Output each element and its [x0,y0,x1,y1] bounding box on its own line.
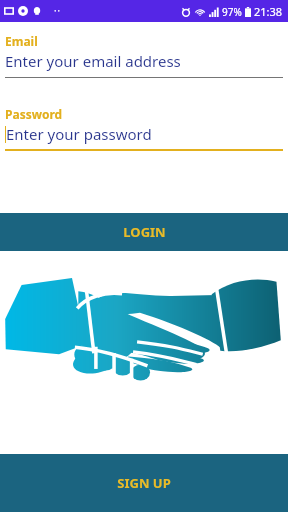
staticText: Email [5,33,38,49]
staticText: Password [5,106,63,122]
staticText: LOGIN [123,223,166,241]
button[interactable]: Email [0,33,288,78]
staticText: Enter your email address [5,51,181,71]
button[interactable]: LOGIN [0,213,288,251]
button[interactable]: Password [0,106,288,151]
staticText: SIGN UP [117,474,171,492]
other: Handshake illustration [0,265,288,393]
staticText: 21:38 [254,4,283,19]
staticText: Enter your password [6,124,152,144]
staticText: 97% [222,5,242,19]
button[interactable]: SIGN UP [0,454,288,512]
